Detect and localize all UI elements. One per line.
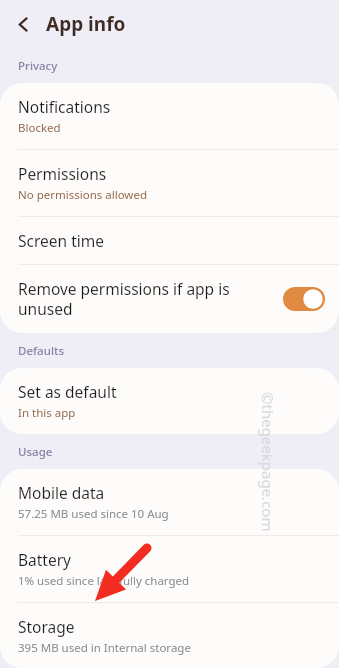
button[interactable]: Storage	[0, 603, 339, 668]
button[interactable]: Remove permissions if app is unused	[0, 265, 339, 333]
button[interactable]: Screen time	[0, 217, 339, 264]
staticText: Blocked	[18, 120, 61, 136]
staticText: Permissions	[18, 163, 107, 184]
staticText: No permissions allowed	[18, 187, 147, 203]
staticText: Set as default	[18, 381, 117, 402]
staticText: Mobile data	[18, 482, 105, 503]
staticText: 57.25 MB used since 10 Aug	[18, 506, 169, 522]
staticText: 395 MB used in Internal storage	[18, 640, 191, 655]
staticText: Battery	[18, 549, 72, 570]
staticText: Usage	[18, 444, 53, 460]
button[interactable]: Battery	[0, 536, 339, 602]
button[interactable]: Back	[0, 1, 46, 47]
staticText: App info	[46, 11, 126, 37]
button[interactable]: Mobile data	[0, 469, 339, 535]
staticText: 1% used since last fully charged	[18, 573, 190, 589]
button[interactable]: Notifications	[0, 83, 339, 149]
staticText: Screen time	[18, 230, 104, 251]
button[interactable]: Set as default	[0, 368, 339, 434]
button[interactable]: Remove permissions if app is unused togg…	[283, 287, 325, 311]
staticText: Notifications	[18, 96, 111, 117]
staticText: ©thegeekpage.com	[258, 392, 278, 532]
staticText: In this app	[18, 405, 76, 421]
staticText: Privacy	[18, 58, 58, 74]
staticText: Storage	[18, 616, 75, 637]
staticText: Defaults	[18, 343, 64, 359]
staticText: Remove permissions if app is unused	[18, 278, 273, 320]
button[interactable]: Permissions	[0, 150, 339, 216]
